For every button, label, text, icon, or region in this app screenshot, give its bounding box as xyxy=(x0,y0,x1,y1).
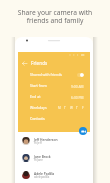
staticText: T xyxy=(76,106,78,110)
staticText: Weekdays xyxy=(30,105,47,110)
staticText: Jane Brock xyxy=(34,154,51,158)
button[interactable]: Shared with friends xyxy=(18,69,90,80)
staticText: Hi Jeff xyxy=(34,141,42,145)
staticText: 9:00 AM xyxy=(71,84,84,88)
button[interactable]: Back xyxy=(20,59,28,67)
staticText: 6:30 PM xyxy=(71,95,84,99)
staticText: Share your camera with friends and famil… xyxy=(0,8,110,25)
button[interactable]: Start video call xyxy=(79,127,87,135)
staticText: Shared with friends xyxy=(30,72,62,77)
button[interactable]: Weekdays xyxy=(18,102,90,113)
button[interactable]: Start from xyxy=(18,80,90,91)
staticText: W xyxy=(70,106,73,110)
staticText: End at xyxy=(30,94,41,99)
staticText: F xyxy=(82,106,84,110)
staticText: Contacts xyxy=(30,116,45,121)
button[interactable]: Contacts xyxy=(18,113,90,124)
button[interactable]: Jeff Henderson xyxy=(18,132,90,149)
staticText: T xyxy=(64,106,66,110)
staticText: adelepadilla xyxy=(34,175,50,179)
staticText: Friends xyxy=(31,60,48,66)
staticText: Jeff Henderson xyxy=(34,137,58,141)
button[interactable]: Jane Brock xyxy=(18,149,90,166)
button[interactable]: End at xyxy=(18,91,90,102)
staticText: Adele Padilla xyxy=(34,171,55,175)
staticText: Hi Jane xyxy=(34,158,43,162)
staticText: M xyxy=(58,106,61,110)
staticText: Start from xyxy=(30,83,47,88)
button[interactable]: Adele Padilla xyxy=(18,166,90,183)
